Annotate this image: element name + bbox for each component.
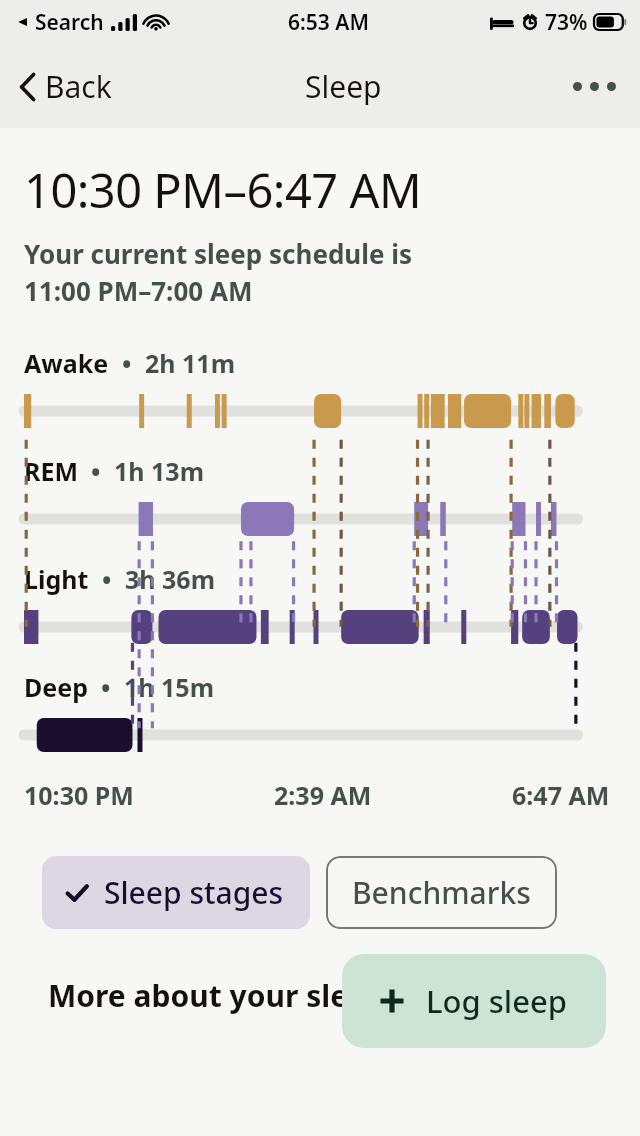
staticText: More about your sleep [48, 975, 385, 1016]
staticText: Sleep [305, 66, 382, 107]
staticText: • [109, 346, 145, 380]
staticText: 6:53 AM [288, 8, 369, 37]
staticText: Search [35, 8, 104, 37]
staticText: Awake [24, 346, 109, 380]
staticText: Your current sleep schedule is [24, 236, 413, 271]
staticText: 73% [545, 8, 588, 37]
staticText: REM [24, 454, 78, 488]
staticText: 3h 36m [125, 562, 216, 596]
staticText: 10:30 PM–6:47 AM [24, 158, 422, 222]
staticText: 2:39 AM [274, 778, 372, 812]
button[interactable]: Sleep stages [42, 856, 310, 929]
staticText: • [88, 670, 124, 704]
staticText: Back [45, 66, 112, 107]
button[interactable]: Back [18, 66, 120, 107]
button[interactable]: More options [567, 72, 622, 101]
staticText: • [89, 562, 125, 596]
staticText: Benchmarks [352, 872, 531, 913]
staticText: 1h 15m [124, 670, 215, 704]
staticText: 1h 13m [114, 454, 205, 488]
button[interactable]: Benchmarks [326, 856, 557, 929]
staticText: 10:30 PM [24, 778, 134, 812]
staticText: 11:00 PM–7:00 AM [24, 273, 253, 308]
staticText: • [78, 454, 114, 488]
staticText: Log sleep [426, 980, 568, 1022]
staticText: 2h 11m [145, 346, 236, 380]
staticText: 6:47 AM [512, 778, 610, 812]
button[interactable]: Log sleep [342, 954, 606, 1048]
staticText: Light [24, 562, 89, 596]
staticText: Deep [24, 670, 88, 704]
staticText: Sleep stages [104, 872, 284, 913]
